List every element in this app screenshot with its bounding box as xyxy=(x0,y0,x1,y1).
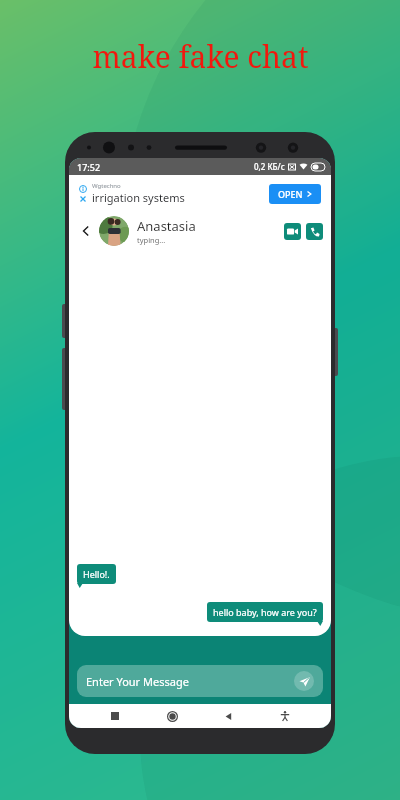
staticText: Enter Your Message xyxy=(86,674,189,689)
staticText: 0,2 КБ/c xyxy=(254,161,285,172)
button[interactable]: Home xyxy=(161,705,183,727)
button[interactable]: Back xyxy=(77,222,95,240)
button[interactable]: Video call xyxy=(284,223,301,240)
staticText: make fake chat xyxy=(92,36,309,77)
button[interactable]: Hello!. xyxy=(77,564,116,584)
staticText: OPEN xyxy=(278,188,303,200)
button[interactable]: Back xyxy=(217,705,239,727)
staticText: Hello!. xyxy=(83,568,110,580)
staticText: irrigation systems xyxy=(92,190,185,205)
button[interactable]: hello baby, how are you? xyxy=(207,602,323,622)
staticText: typing... xyxy=(137,235,166,245)
button[interactable]: OPEN xyxy=(269,184,321,204)
button[interactable]: Profile photo xyxy=(99,216,129,246)
button[interactable]: Send xyxy=(294,671,314,691)
button[interactable]: Accessibility xyxy=(274,705,296,727)
button[interactable]: Recents xyxy=(104,705,126,727)
staticText: 17:52 xyxy=(77,161,101,173)
button[interactable]: Wgtechno xyxy=(69,175,331,211)
staticText: hello baby, how are you? xyxy=(213,606,317,618)
button[interactable]: Enter Your Message xyxy=(77,665,323,697)
staticText: Wgtechno xyxy=(92,182,121,190)
staticText: Anastasia xyxy=(137,217,196,235)
button[interactable]: Voice call xyxy=(306,223,323,240)
